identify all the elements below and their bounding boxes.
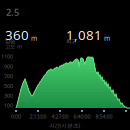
staticText: 900: [4, 63, 13, 70]
staticText: 500: [4, 82, 13, 89]
staticText: 고도 m: [5, 43, 22, 50]
staticText: 상승: [5, 38, 15, 45]
staticText: 시간(시:분:초): [49, 122, 80, 129]
staticText: 100: [4, 102, 13, 109]
staticText: 360: [5, 26, 29, 44]
staticText: 8:54:00: [95, 113, 112, 120]
staticText: 최고: [66, 38, 76, 45]
staticText: 2.5: [6, 6, 19, 18]
staticText: 1100: [1, 53, 13, 60]
staticText: 2:13:00: [29, 113, 46, 120]
staticText: 300: [4, 92, 13, 99]
staticText: 0:00: [11, 113, 21, 120]
staticText: 1,081: [66, 26, 102, 44]
staticText: 6:40:00: [73, 113, 90, 120]
staticText: 700: [4, 73, 13, 80]
staticText: 4:27:00: [51, 113, 68, 120]
staticText: m: [31, 34, 37, 43]
staticText: m: [104, 34, 110, 43]
